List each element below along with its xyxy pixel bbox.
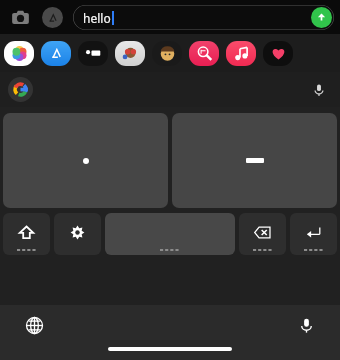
button[interactable]: Apple Pay — [78, 41, 108, 66]
button[interactable]: Period — [3, 113, 168, 208]
button[interactable]: hello — [73, 5, 334, 30]
button[interactable]: Settings — [54, 213, 101, 255]
button[interactable]: Backspace — [239, 213, 286, 255]
button[interactable]: Hyphen — [172, 113, 337, 208]
button[interactable]: Images — [189, 41, 219, 66]
button[interactable]: Sticker — [115, 41, 145, 66]
button[interactable]: App Store — [41, 41, 71, 66]
button[interactable]: Shift — [3, 213, 50, 255]
button[interactable]: Apps — [38, 3, 66, 31]
button[interactable]: Voice input — [294, 313, 318, 337]
button[interactable]: Camera — [6, 3, 34, 31]
button[interactable]: Music — [226, 41, 256, 66]
button[interactable]: Space — [105, 213, 235, 255]
staticText: hello — [83, 10, 111, 26]
button[interactable]: Voice search — [308, 79, 330, 101]
button[interactable]: Change keyboard — [22, 313, 46, 337]
button[interactable]: Enter — [290, 213, 337, 255]
button[interactable]: Send — [311, 7, 332, 28]
button[interactable]: More — [263, 41, 293, 66]
button[interactable]: Photos — [4, 41, 34, 66]
button[interactable]: Google search — [8, 77, 33, 102]
button[interactable]: Memoji — [152, 41, 182, 66]
